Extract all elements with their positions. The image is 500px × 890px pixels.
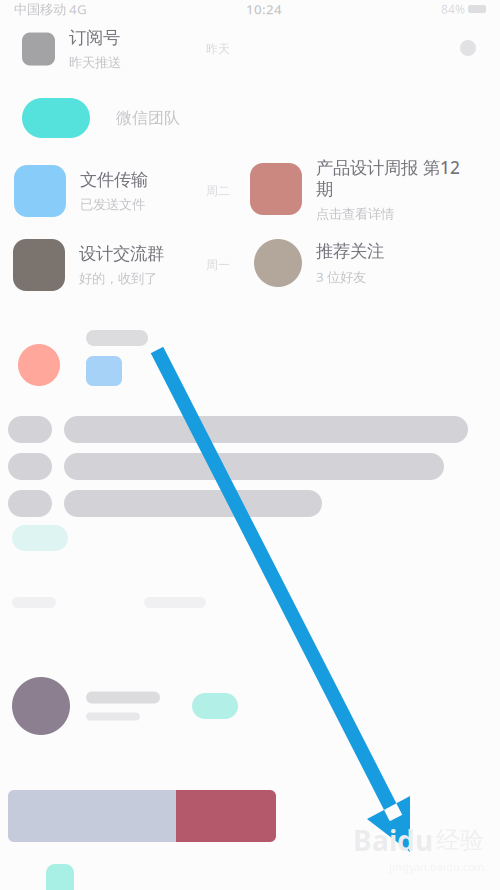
button[interactable]: 推荐关注 — [240, 226, 500, 300]
staticText: 周二 — [206, 184, 230, 198]
staticText: 产品设计周报 第12期 — [316, 156, 460, 200]
staticText: 周一 — [206, 258, 230, 272]
staticText: 84% — [441, 1, 465, 17]
button[interactable]: 微信团队 — [0, 80, 240, 156]
staticText: 点击查看详情 — [316, 206, 394, 222]
staticText: 昨天推送 — [69, 54, 121, 71]
button[interactable]: 文件传输 — [0, 156, 240, 226]
staticText: 订阅号 — [69, 27, 120, 48]
staticText: 设计交流群 — [79, 243, 164, 264]
staticText: 文件传输 — [80, 169, 148, 190]
button[interactable] — [0, 674, 240, 738]
staticText: 昨天 — [206, 42, 230, 56]
staticText: 微信团队 — [116, 108, 180, 128]
staticText: 中国移动 4G — [14, 0, 87, 18]
button[interactable]: 产品设计周报 第12期 — [240, 152, 500, 226]
button[interactable]: 设计交流群 — [0, 226, 240, 304]
staticText: 好的，收到了 — [79, 270, 157, 287]
button[interactable]: 订阅号 — [0, 18, 240, 80]
button[interactable]: Tab — [0, 864, 74, 890]
staticText: 推荐关注 — [316, 240, 384, 262]
staticText: 10:24 — [246, 0, 282, 18]
button[interactable] — [0, 316, 240, 404]
staticText: 经验 — [436, 825, 484, 855]
staticText: Baidu — [353, 822, 433, 859]
button[interactable] — [0, 790, 276, 842]
staticText: 3 位好友 — [316, 268, 366, 285]
staticText: 已发送文件 — [80, 196, 145, 213]
